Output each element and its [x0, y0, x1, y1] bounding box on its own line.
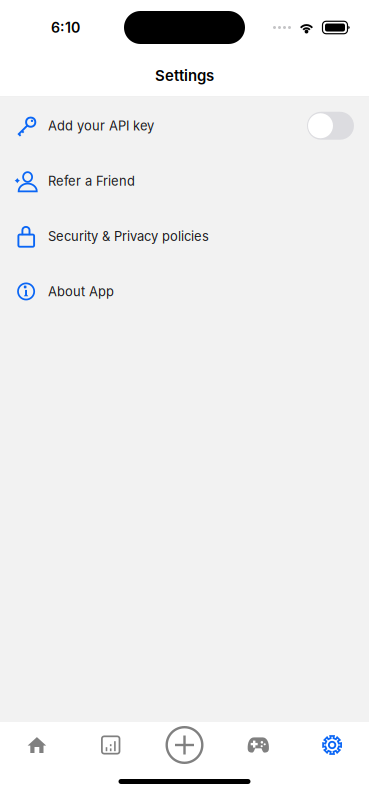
staticText: Settings — [155, 66, 214, 85]
staticText: Security & Privacy policies — [48, 228, 209, 244]
staticText: Add your API key — [48, 118, 154, 133]
button[interactable]: Security & Privacy policies — [0, 209, 369, 264]
staticText: About App — [48, 284, 114, 299]
button[interactable]: Refer a Friend — [0, 153, 369, 209]
button[interactable]: Settings — [295, 722, 369, 768]
button[interactable]: Games — [221, 722, 295, 768]
button[interactable]: Statistics — [74, 722, 148, 768]
button[interactable]: Add your API key — [0, 98, 369, 153]
staticText: Refer a Friend — [48, 173, 135, 189]
staticText: 6:10 — [51, 19, 80, 36]
button[interactable]: Add — [148, 722, 221, 768]
button[interactable]: About App — [0, 264, 369, 319]
button[interactable]: Home — [0, 722, 74, 768]
